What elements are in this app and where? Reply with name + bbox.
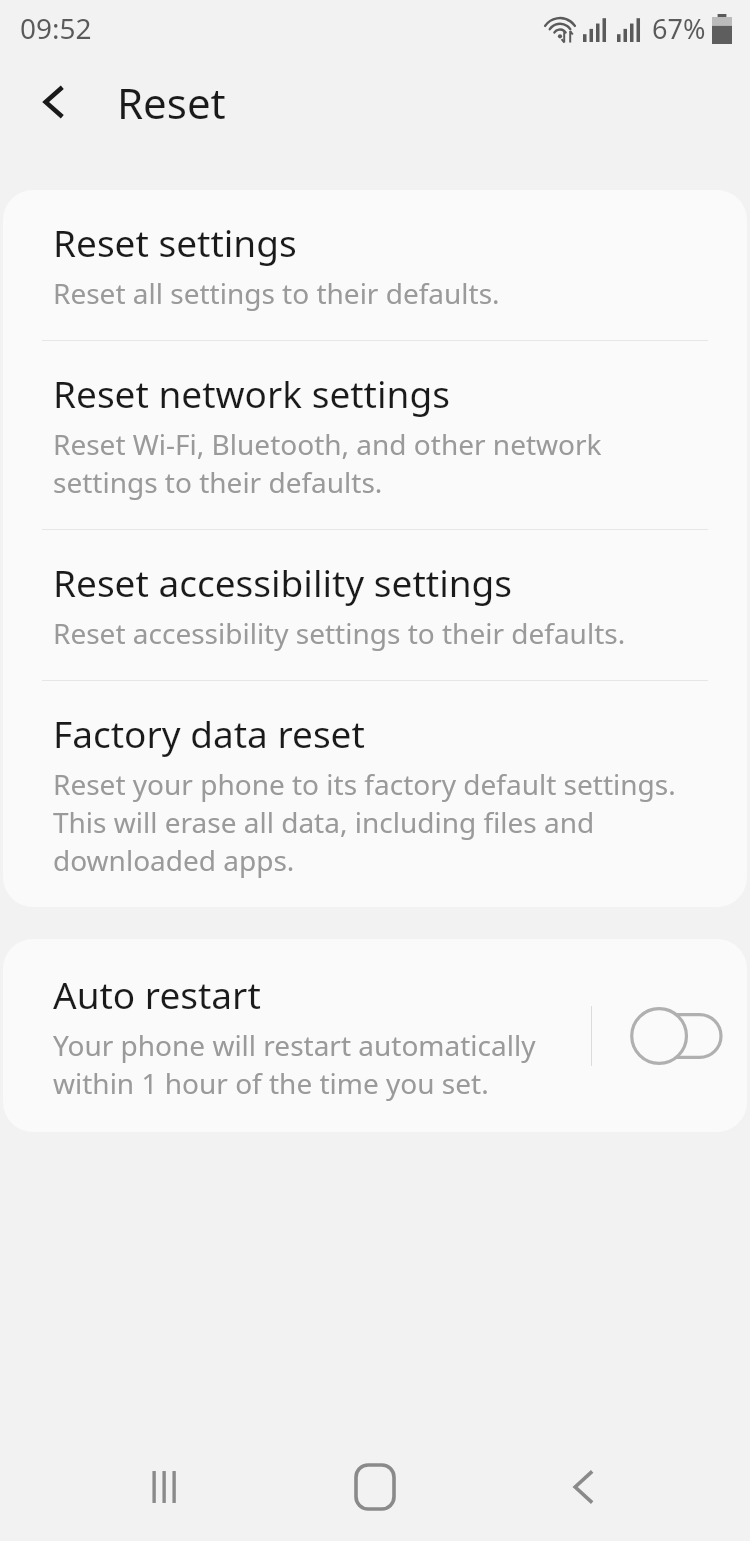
button[interactable]: Factory data reset xyxy=(3,681,747,907)
staticText: Reset accessibility settings xyxy=(53,557,513,607)
staticText: Reset your phone to its factory default … xyxy=(53,765,676,879)
staticText: 09:52 xyxy=(20,9,92,47)
staticText: Reset network settings xyxy=(53,368,450,418)
button[interactable]: Reset settings xyxy=(3,190,747,340)
staticText: Reset all settings to their defaults. xyxy=(53,274,500,312)
button[interactable]: Reset network settings xyxy=(3,341,747,529)
staticText: Auto restart xyxy=(53,969,261,1019)
staticText: Your phone will restart automatically wi… xyxy=(53,1026,536,1102)
button[interactable]: Reset accessibility settings xyxy=(3,530,747,680)
button[interactable]: Home xyxy=(330,1442,420,1532)
staticText: Reset settings xyxy=(53,217,297,267)
staticText: Factory data reset xyxy=(53,708,365,758)
button[interactable]: Recent apps xyxy=(120,1442,210,1532)
staticText: Reset Wi-Fi, Bluetooth, and other networ… xyxy=(53,425,602,501)
button[interactable]: Auto restart toggle xyxy=(619,998,721,1074)
staticText: Reset xyxy=(117,74,226,131)
staticText: Reset accessibility settings to their de… xyxy=(53,614,626,652)
button[interactable]: Back xyxy=(538,1442,628,1532)
button[interactable]: Auto restart xyxy=(3,939,747,1132)
button[interactable]: Back xyxy=(26,74,82,130)
staticText: 67% xyxy=(652,10,706,47)
